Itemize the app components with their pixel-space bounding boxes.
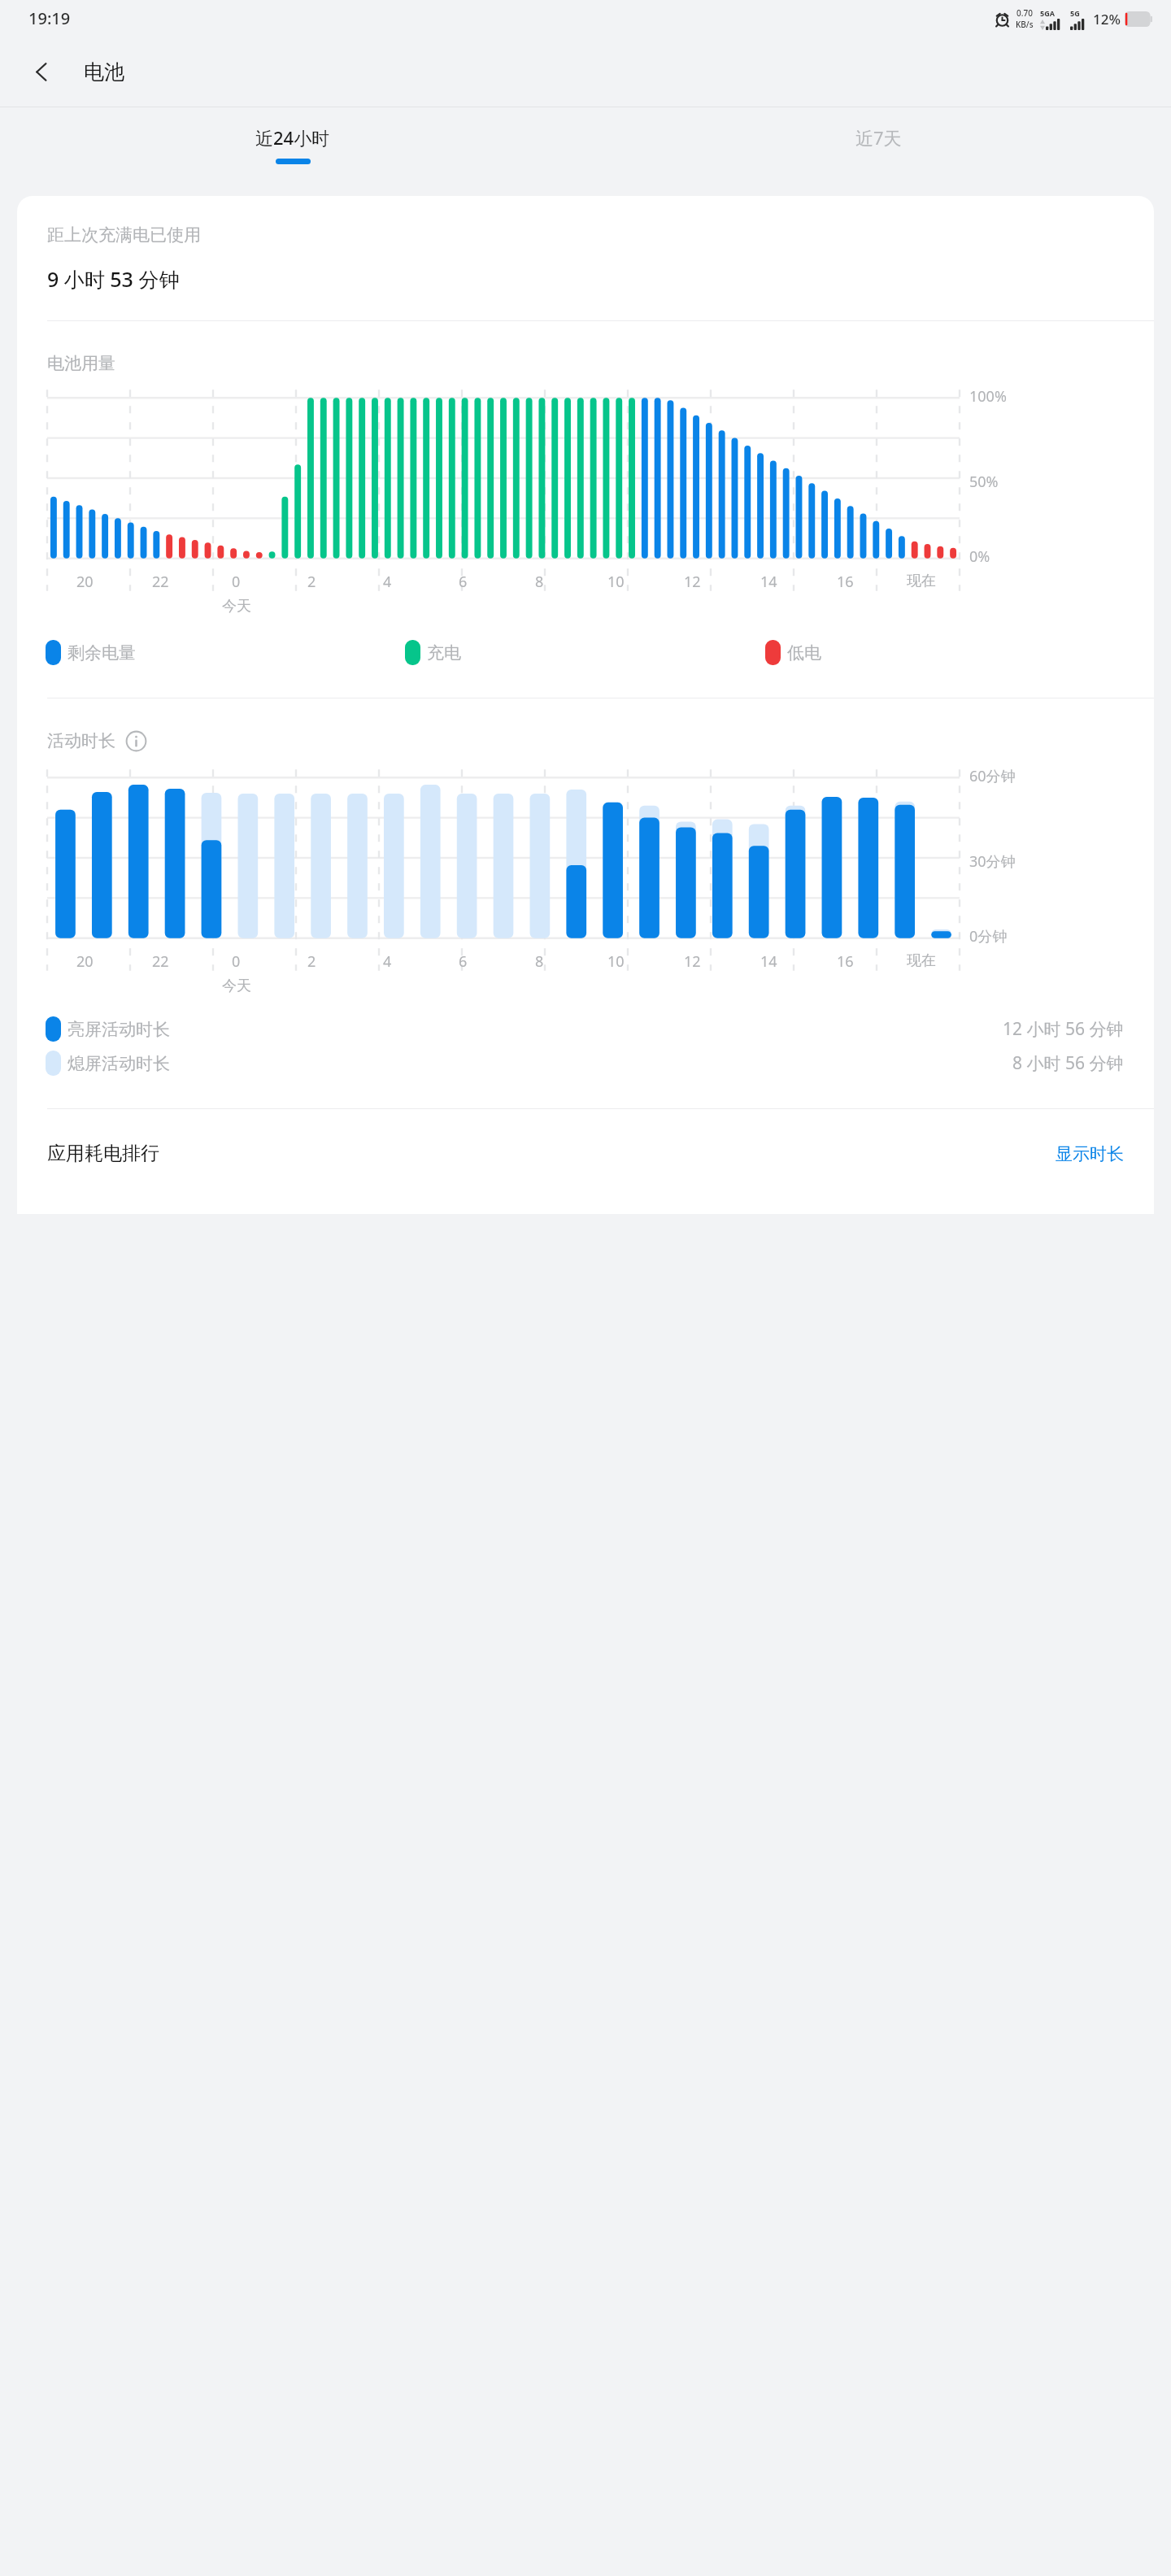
staticText: 6 — [459, 951, 468, 972]
staticText: 0.70 — [1016, 7, 1033, 19]
staticText: 8 — [535, 572, 544, 592]
button[interactable]: 显示时长 — [1056, 1143, 1124, 1164]
staticText: 6 — [459, 572, 468, 592]
button[interactable]: Info — [123, 728, 149, 754]
button[interactable]: 近7天 — [585, 107, 1171, 182]
staticText: 12 — [684, 951, 701, 972]
staticText: 0 — [232, 572, 241, 592]
staticText: 今天 — [222, 597, 251, 616]
staticText: 今天 — [222, 977, 251, 995]
staticText: 应用耗电排行 — [47, 1142, 159, 1165]
staticText: 0% — [969, 546, 990, 567]
staticText: 12 小时 56 分钟 — [1003, 1017, 1124, 1041]
staticText: 10 — [607, 951, 625, 972]
button[interactable]: 近24小时 — [0, 107, 585, 182]
staticText: 20 — [76, 951, 94, 972]
staticText: 50% — [969, 472, 999, 492]
staticText: 0 — [232, 951, 241, 972]
staticText: KB/s — [1016, 19, 1034, 30]
staticText: 9 小时 53 分钟 — [47, 265, 180, 293]
staticText: 8 — [535, 951, 544, 972]
staticText: 充电 — [427, 642, 461, 664]
staticText: 显示时长 — [1056, 1143, 1124, 1164]
staticText: 活动时长 — [47, 730, 115, 751]
staticText: 16 — [837, 572, 854, 592]
staticText: 14 — [760, 572, 777, 592]
staticText: 20 — [76, 572, 94, 592]
staticText: 30分钟 — [969, 851, 1016, 872]
button[interactable]: Back — [18, 48, 65, 95]
staticText: 4 — [383, 951, 392, 972]
staticText: 剩余电量 — [67, 642, 136, 664]
staticText: 现在 — [907, 951, 936, 970]
staticText: 熄屏活动时长 — [67, 1053, 170, 1074]
staticText: 100% — [969, 386, 1007, 407]
staticText: 2 — [307, 951, 316, 972]
staticText: 电池用量 — [47, 353, 115, 374]
staticText: 5GA — [1040, 8, 1055, 18]
staticText: 22 — [152, 951, 169, 972]
staticText: 8 小时 56 分钟 — [1012, 1051, 1124, 1075]
staticText: 距上次充满电已使用 — [47, 224, 201, 246]
staticText: 14 — [760, 951, 777, 972]
staticText: 22 — [152, 572, 169, 592]
staticText: 近7天 — [855, 125, 902, 150]
staticText: 亮屏活动时长 — [67, 1019, 170, 1040]
staticText: 0分钟 — [969, 926, 1008, 946]
staticText: 12% — [1093, 10, 1121, 28]
staticText: 4 — [383, 572, 392, 592]
staticText: 12 — [684, 572, 701, 592]
staticText: 2 — [307, 572, 316, 592]
staticText: 低电 — [787, 642, 821, 664]
staticText: 电池 — [84, 59, 124, 85]
staticText: 近24小时 — [255, 125, 330, 150]
staticText: 现在 — [907, 572, 936, 590]
staticText: 19:19 — [28, 7, 71, 29]
staticText: 60分钟 — [969, 766, 1016, 786]
staticText: 10 — [607, 572, 625, 592]
staticText: 5G — [1070, 8, 1080, 18]
staticText: 16 — [837, 951, 854, 972]
